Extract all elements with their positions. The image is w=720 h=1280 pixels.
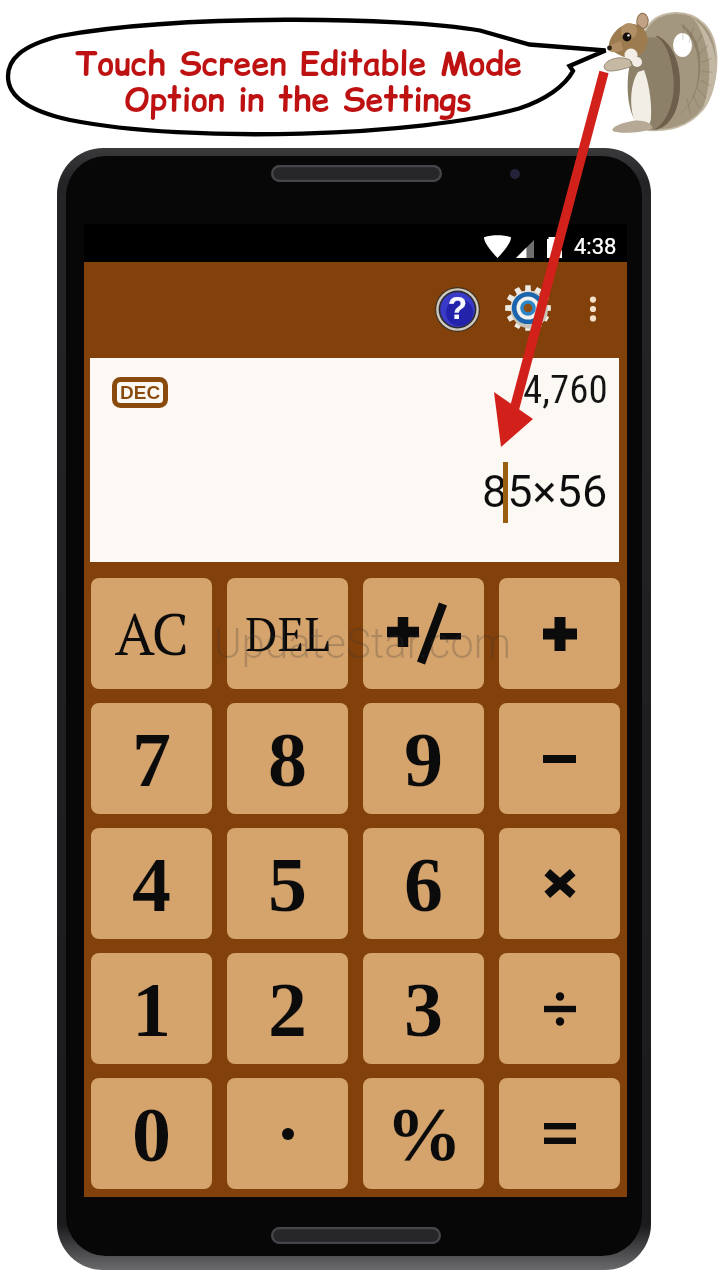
- staticText: DEC: [120, 382, 161, 403]
- button[interactable]: DEL: [227, 578, 348, 689]
- button[interactable]: Help: [435, 287, 480, 332]
- staticText: DEL: [245, 603, 330, 664]
- staticText: AC: [115, 595, 189, 672]
- button[interactable]: [363, 578, 484, 689]
- staticText: 4,760: [523, 367, 608, 413]
- button[interactable]: [499, 953, 620, 1064]
- staticText: 1: [132, 966, 171, 1052]
- staticText: %: [386, 1092, 462, 1176]
- button[interactable]: 8: [227, 703, 348, 814]
- button[interactable]: [499, 828, 620, 939]
- other: Squirrel mascot: [0, 0, 720, 1280]
- button[interactable]: 7: [91, 703, 212, 814]
- staticText: Touch Screen Editable Mode: [75, 41, 522, 86]
- button[interactable]: DEC: [112, 377, 168, 408]
- button[interactable]: 6: [363, 828, 484, 939]
- staticText: 4: [132, 841, 171, 927]
- button[interactable]: 3: [363, 953, 484, 1064]
- button[interactable]: More options: [578, 285, 608, 331]
- button[interactable]: 9: [363, 703, 484, 814]
- staticText: 2: [268, 966, 307, 1052]
- staticText: Option in the Settings: [124, 77, 472, 122]
- staticText: 6: [404, 841, 443, 927]
- button[interactable]: Settings: [505, 285, 551, 331]
- staticText: UpdateStar.com: [214, 619, 511, 668]
- staticText: 5: [268, 841, 307, 927]
- button[interactable]: AC: [91, 578, 212, 689]
- staticText: 3: [404, 966, 443, 1052]
- button[interactable]: [499, 703, 620, 814]
- staticText: 0: [132, 1091, 171, 1177]
- button[interactable]: [227, 1078, 348, 1189]
- button[interactable]: 0: [91, 1078, 212, 1189]
- staticText: 7: [132, 716, 171, 802]
- button[interactable]: %: [363, 1078, 484, 1189]
- staticText: ?: [448, 291, 467, 326]
- staticText: 4:38: [574, 234, 617, 260]
- button[interactable]: [499, 578, 620, 689]
- staticText: 8: [268, 716, 307, 802]
- button[interactable]: 4: [91, 828, 212, 939]
- button[interactable]: 5: [227, 828, 348, 939]
- button[interactable]: 2: [227, 953, 348, 1064]
- button[interactable]: [499, 1078, 620, 1189]
- button[interactable]: 1: [91, 953, 212, 1064]
- staticText: 9: [404, 716, 443, 802]
- staticText: 85×56: [482, 465, 608, 518]
